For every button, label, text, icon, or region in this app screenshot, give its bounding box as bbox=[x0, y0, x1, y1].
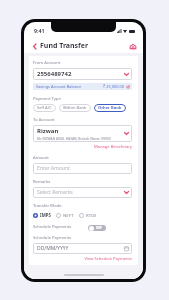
staticText: Remarks bbox=[33, 179, 51, 185]
staticText: Self A/C bbox=[37, 105, 52, 111]
staticText: Rizwan bbox=[37, 127, 59, 135]
staticText: Schedule Payments bbox=[33, 235, 72, 241]
button[interactable]: View Schedule Payments bbox=[33, 256, 132, 262]
button[interactable]: Rizwan bbox=[33, 125, 132, 142]
staticText: Other Bank bbox=[98, 105, 122, 111]
button[interactable]: 2556489742 bbox=[33, 68, 132, 80]
staticText: Savings Account Balance bbox=[36, 84, 82, 89]
button[interactable]: Within Bank bbox=[59, 104, 91, 112]
button[interactable]: Self A/C bbox=[33, 104, 56, 112]
staticText: Mr. RIZWAN ANUL HASAN, Branch Name: 0900… bbox=[37, 136, 111, 140]
staticText: ₹ 25,000.00 bbox=[103, 84, 124, 89]
staticText: NEFT bbox=[63, 212, 74, 218]
button[interactable]: RTGS bbox=[79, 212, 97, 218]
staticText: 9:41 bbox=[34, 27, 45, 34]
button[interactable]: Manage Beneficiary bbox=[33, 144, 132, 150]
button[interactable]: OFF bbox=[88, 225, 106, 231]
staticText: IMPS bbox=[40, 212, 51, 218]
button[interactable]: IMPS bbox=[33, 212, 51, 218]
staticText: Within Bank bbox=[63, 105, 87, 111]
staticText: DD/MM/YYYY bbox=[37, 245, 69, 252]
button[interactable]: Enter Amount bbox=[33, 163, 132, 174]
staticText: Enter Amount bbox=[37, 165, 70, 172]
staticText: OFF bbox=[96, 226, 103, 230]
staticText: Transfer Mode bbox=[33, 203, 62, 209]
button[interactable]: Other Bank bbox=[94, 104, 126, 112]
button[interactable]: Select Remarks bbox=[33, 187, 132, 198]
staticText: Fund Transfer bbox=[40, 41, 89, 51]
button[interactable]: Home bbox=[128, 41, 138, 51]
button[interactable]: Back bbox=[30, 42, 39, 51]
staticText: Schedule Payments bbox=[33, 224, 72, 230]
staticText: RTGS bbox=[86, 212, 97, 218]
staticText: Amount bbox=[33, 155, 49, 161]
button[interactable]: DD/MM/YYYY bbox=[33, 243, 132, 254]
staticText: Payment Type bbox=[33, 96, 61, 102]
staticText: Select Remarks bbox=[37, 189, 73, 196]
staticText: From Account bbox=[33, 60, 61, 66]
staticText: To Account bbox=[33, 117, 55, 123]
staticText: 2556489742 bbox=[37, 70, 72, 78]
button[interactable]: NEFT bbox=[56, 212, 74, 218]
